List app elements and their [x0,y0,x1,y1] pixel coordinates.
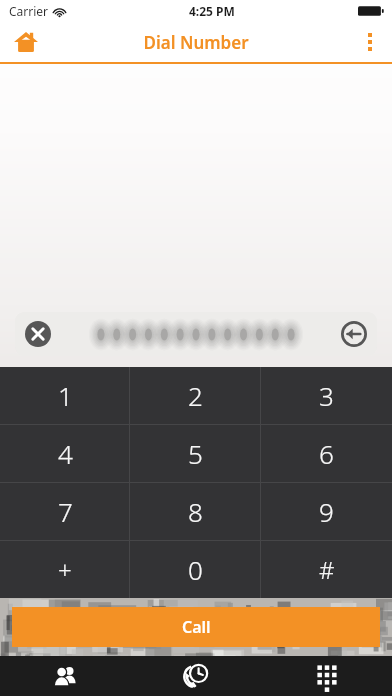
staticText: 6 [319,436,334,471]
staticText: # [319,553,335,586]
button[interactable]: 4 [0,425,130,482]
staticText: 7 [58,494,73,529]
button[interactable]: # [261,541,392,598]
button[interactable]: 6 [261,425,392,482]
staticText: 5 [188,436,203,471]
staticText: 4:25 PM [189,3,235,19]
staticText: + [58,553,72,586]
staticText: 9 [319,494,334,529]
staticText: 3 [319,378,334,413]
button[interactable]: Recents [130,656,261,696]
button[interactable]: 1 [0,367,130,424]
staticText: 8 [188,494,203,529]
button[interactable]: 5 [130,425,261,482]
staticText: 0 [188,552,203,587]
staticText: 2 [188,378,203,413]
button[interactable]: Call [12,607,380,647]
button[interactable]: Backspace [339,319,369,349]
staticText: 1 [58,378,73,413]
button[interactable]: 7 [0,483,130,540]
button[interactable]: Clear [23,319,53,349]
button[interactable]: More options [348,22,392,62]
staticText: 4 [58,436,73,471]
button[interactable]: Dialpad [261,656,392,696]
button[interactable]: 8 [130,483,261,540]
button[interactable]: 0 [130,541,261,598]
staticText: Carrier [9,3,49,19]
button[interactable]: Home [0,22,52,62]
button[interactable]: 2 [130,367,261,424]
button[interactable]: 3 [261,367,392,424]
staticText: Dial Number [143,31,249,54]
button[interactable]: 9 [261,483,392,540]
button[interactable]: Contacts [0,656,130,696]
staticText: Call [182,616,211,638]
button[interactable]: + [0,541,130,598]
